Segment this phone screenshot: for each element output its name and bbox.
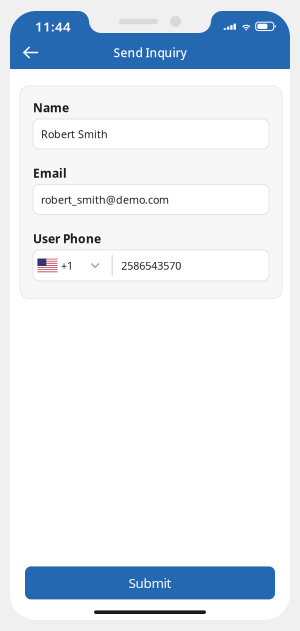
staticText: Send Inquiry bbox=[113, 44, 186, 60]
staticText: Robert Smith bbox=[41, 127, 108, 141]
staticText: Email bbox=[33, 165, 67, 181]
button[interactable]: Back bbox=[10, 35, 65, 69]
staticText: Name bbox=[33, 99, 69, 115]
staticText: 11:44 bbox=[35, 17, 71, 35]
staticText: Submit bbox=[128, 574, 171, 592]
staticText: robert_smith@demo.com bbox=[41, 192, 169, 207]
button[interactable]: Country code, +1 bbox=[37, 251, 100, 280]
staticText: 2586543570 bbox=[121, 258, 181, 273]
staticText: +1 bbox=[61, 258, 73, 273]
button[interactable]: Submit bbox=[25, 566, 275, 599]
staticText: User Phone bbox=[33, 230, 101, 246]
